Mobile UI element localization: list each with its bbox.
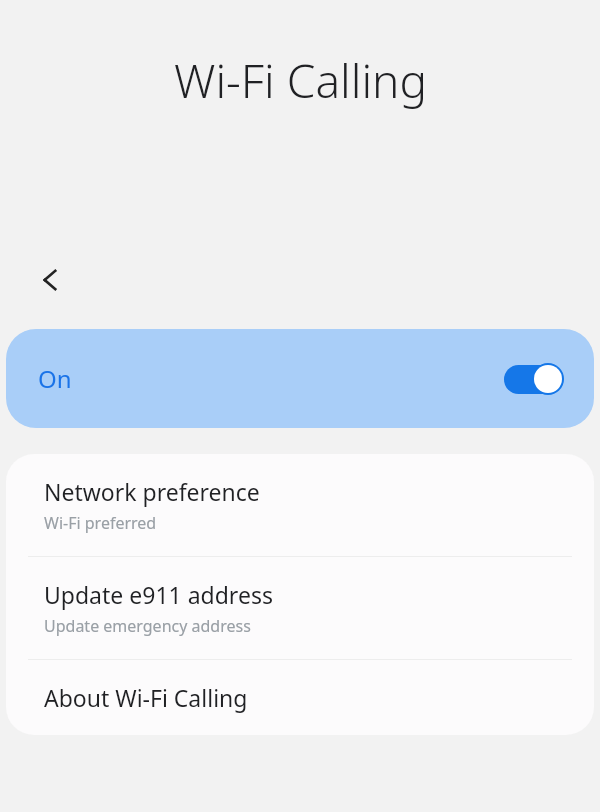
button[interactable]: Wi-Fi Calling on — [503, 362, 564, 396]
staticText: Wi-Fi preferred — [44, 512, 157, 534]
button[interactable]: Update e911 address — [6, 557, 594, 659]
staticText: Network preference — [44, 476, 260, 507]
staticText: On — [38, 362, 72, 395]
button[interactable]: On — [6, 329, 594, 428]
button[interactable]: Network preference — [6, 454, 594, 556]
staticText: About Wi-Fi Calling — [44, 682, 248, 713]
staticText: Wi-Fi Calling — [174, 49, 427, 112]
staticText: Update e911 address — [44, 579, 273, 610]
button[interactable]: Back — [22, 252, 78, 308]
button[interactable]: About Wi-Fi Calling — [6, 660, 594, 735]
staticText: Update emergency address — [44, 615, 251, 637]
